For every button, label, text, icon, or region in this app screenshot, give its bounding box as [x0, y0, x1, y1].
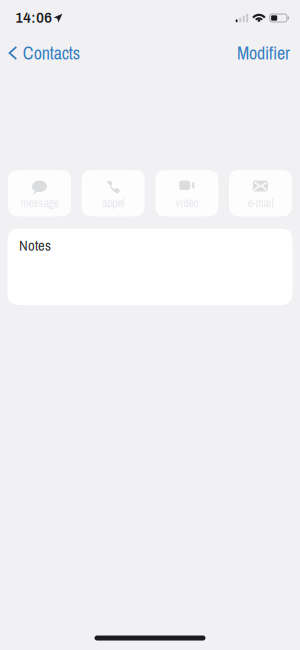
staticText: Contacts	[23, 41, 80, 65]
button[interactable]: message	[8, 170, 71, 216]
staticText: Modifier	[237, 41, 290, 65]
button[interactable]: Notes	[7, 229, 292, 305]
staticText: vidéo	[175, 195, 198, 211]
button[interactable]: Contacts	[0, 36, 80, 70]
button[interactable]: e-mail	[229, 170, 292, 216]
staticText: appel	[102, 195, 124, 211]
button[interactable]: Modifier	[237, 36, 300, 70]
staticText: Notes	[19, 236, 51, 255]
staticText: message	[21, 195, 59, 211]
button[interactable]: vidéo	[155, 170, 218, 216]
staticText: e-mail	[247, 195, 273, 211]
button[interactable]: appel	[82, 170, 145, 216]
staticText: 14:06	[15, 10, 52, 26]
